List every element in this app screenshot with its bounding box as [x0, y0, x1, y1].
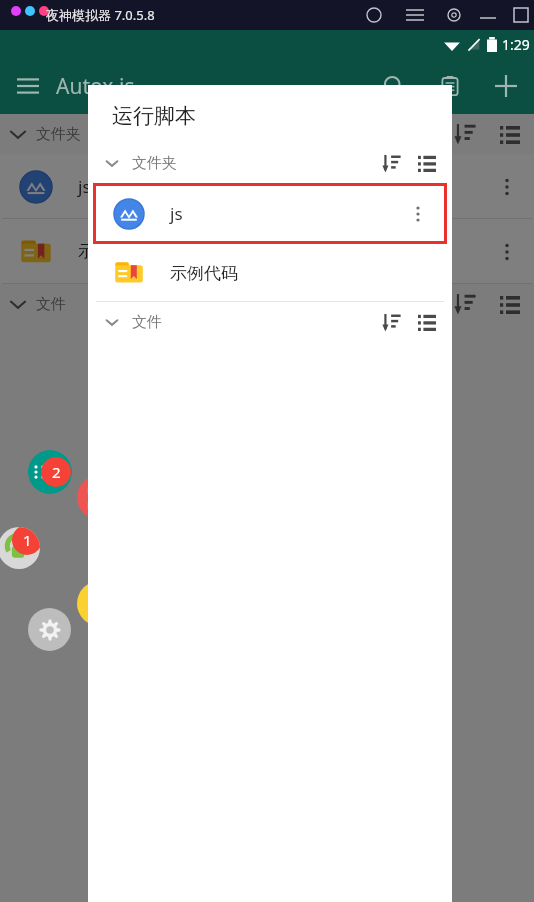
staticText: js [170, 202, 183, 225]
button[interactable]: Settings [28, 608, 71, 651]
staticText: Autox.js [56, 72, 135, 101]
button[interactable]: View mode [412, 148, 442, 178]
button[interactable]: js [96, 186, 444, 241]
button[interactable]: Capture layout [77, 475, 122, 520]
button[interactable]: Accessibility [0, 527, 40, 569]
staticText: js [78, 175, 91, 198]
button[interactable]: Sort [376, 307, 406, 337]
button[interactable]: Menu [0, 58, 56, 114]
button[interactable]: Collapse [100, 151, 124, 175]
staticText: 示例代码 [170, 263, 238, 284]
staticText: 文件夹 [36, 125, 81, 144]
staticText: 1:29 [502, 35, 530, 54]
staticText: 文件 [132, 313, 162, 332]
staticText: 文件 [36, 295, 66, 314]
button[interactable]: View mode [412, 307, 442, 337]
button[interactable]: Search [366, 58, 422, 114]
button[interactable]: Collapse [100, 310, 124, 334]
staticText: 1 [23, 530, 32, 550]
button[interactable]: Sort [376, 148, 406, 178]
staticText: 示例代码 [78, 241, 146, 262]
button[interactable]: Close [77, 581, 122, 626]
button[interactable]: 示例代码 [96, 244, 444, 302]
button[interactable]: Log [422, 58, 478, 114]
staticText: 运行脚本 [112, 103, 196, 129]
button[interactable]: Add [478, 58, 534, 114]
staticText: 2 [52, 462, 61, 482]
button[interactable]: More options [402, 198, 434, 230]
staticText: 文件夹 [132, 154, 177, 173]
button[interactable]: Scripts [28, 450, 72, 494]
staticText: 夜神模拟器 7.0.5.8 [46, 6, 155, 24]
